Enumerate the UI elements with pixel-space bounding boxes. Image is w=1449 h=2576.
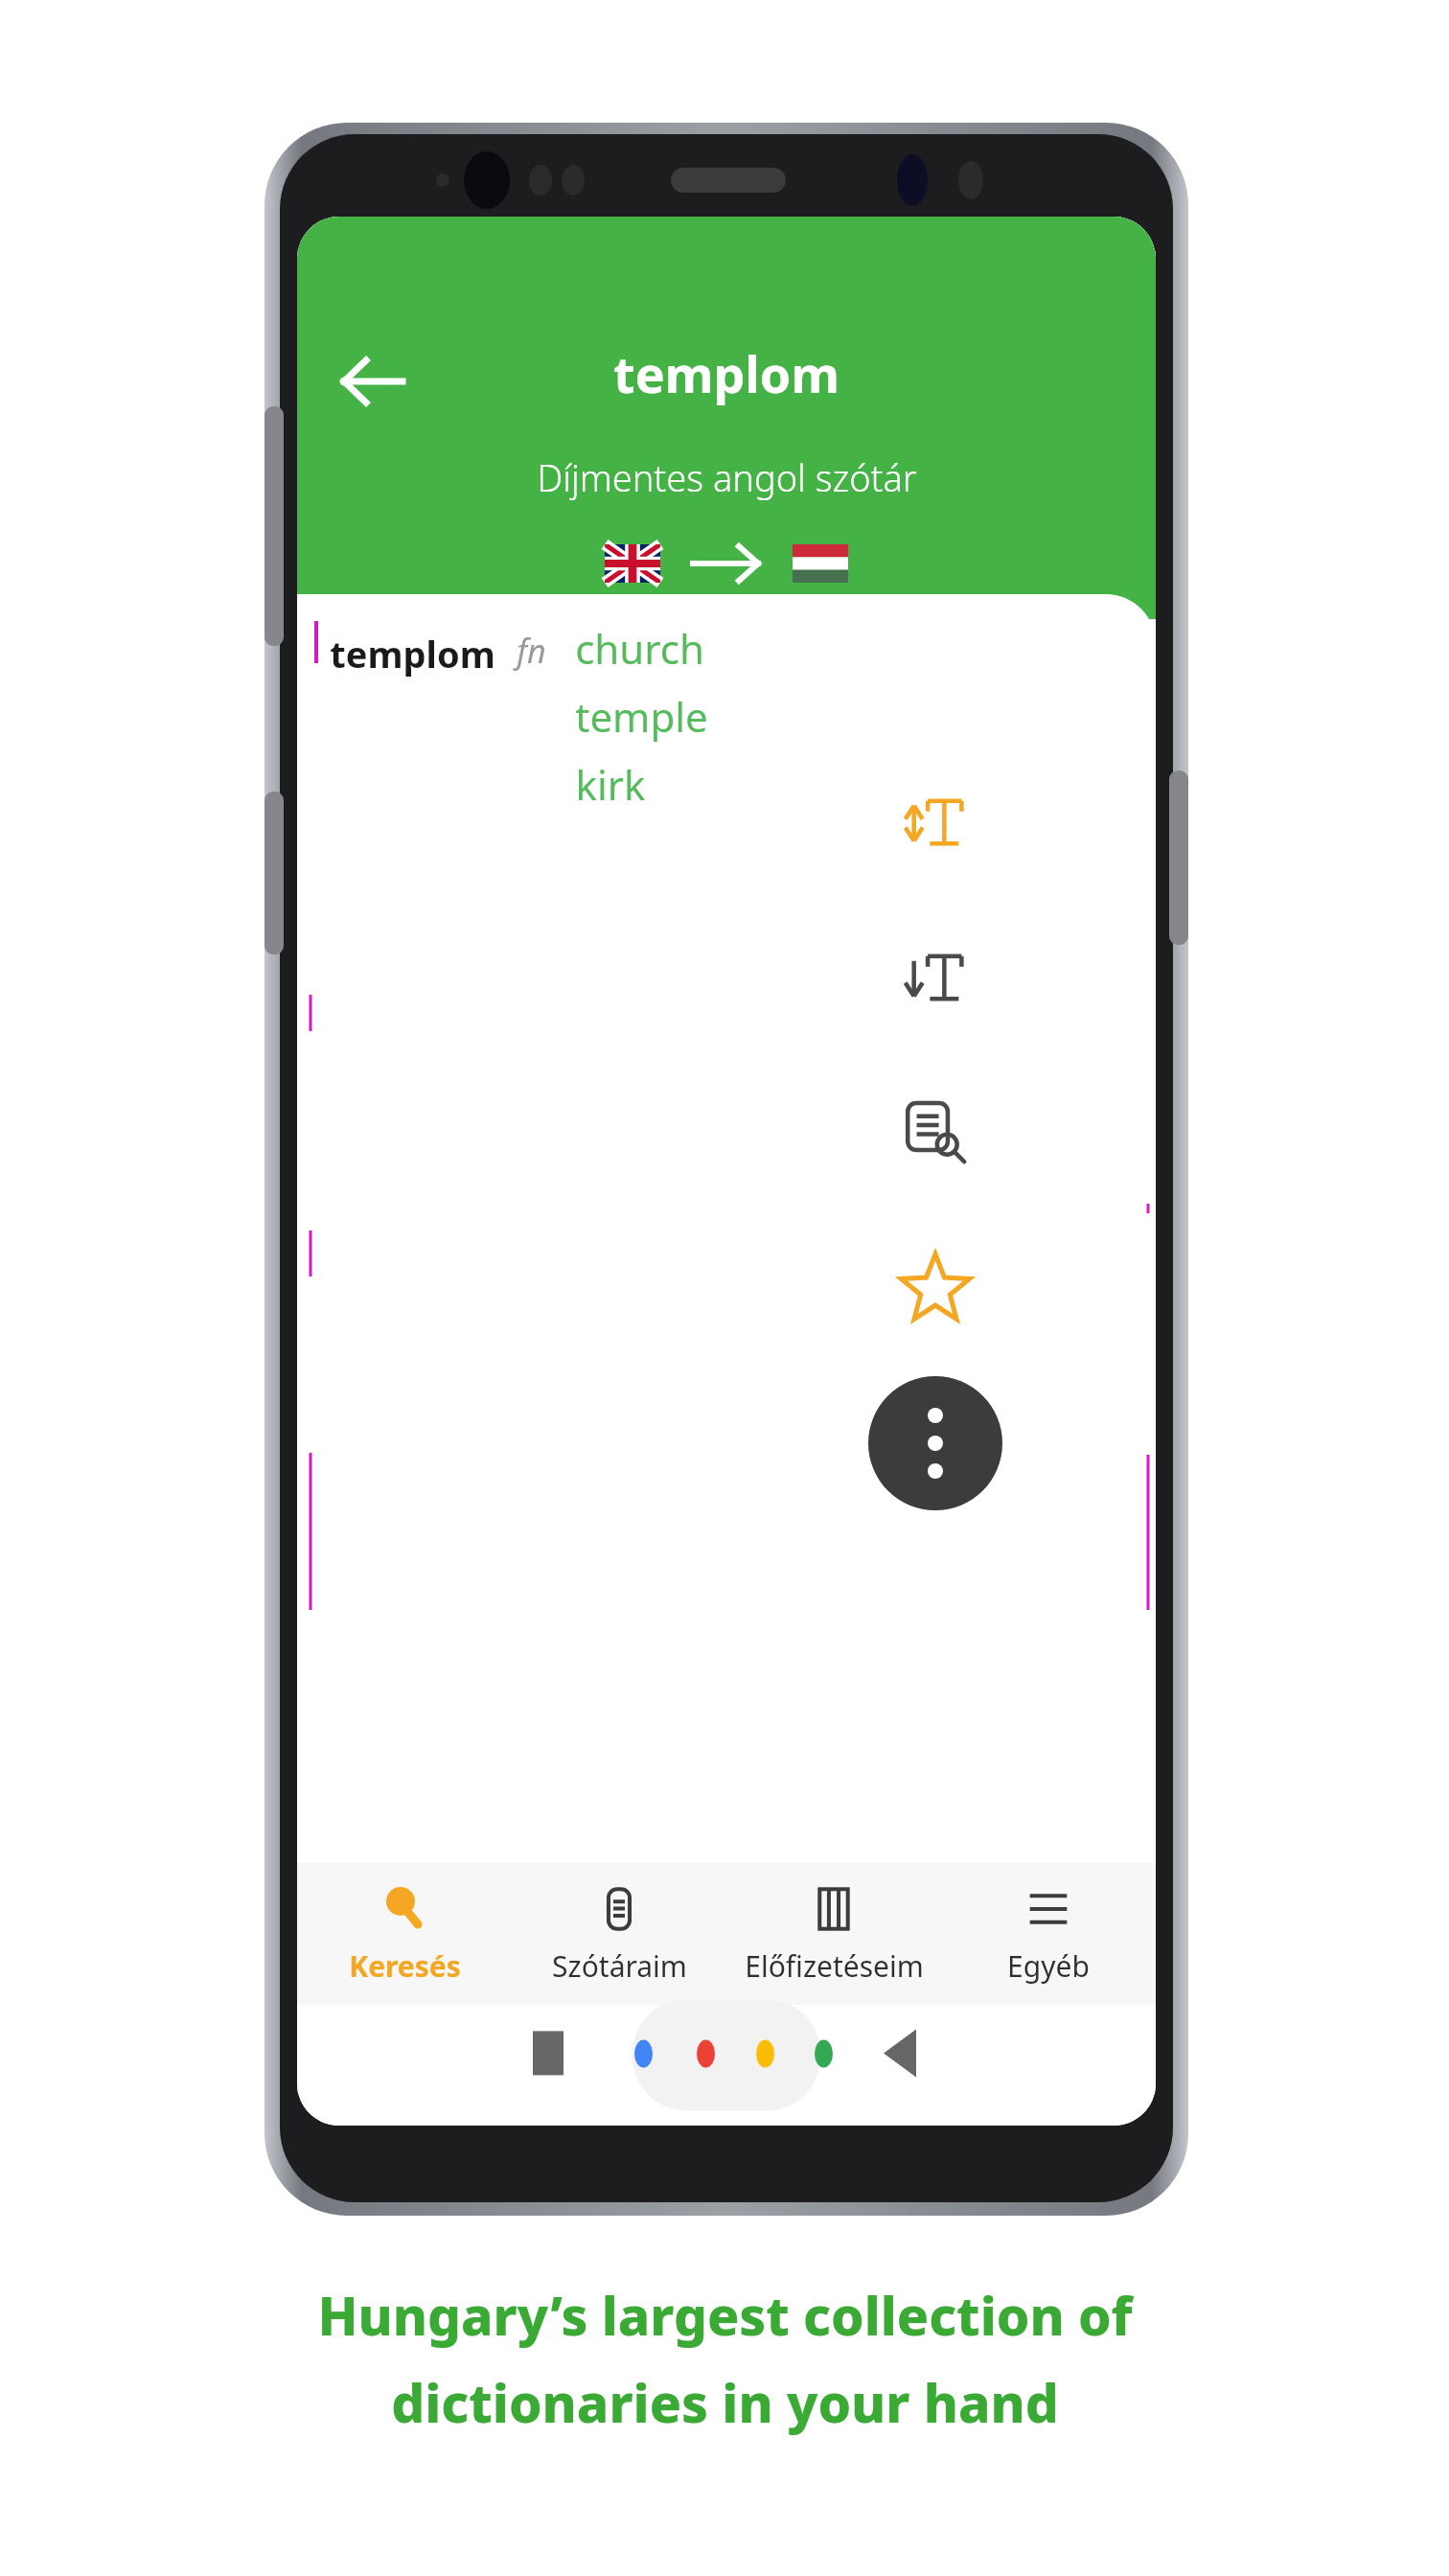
staticText: Előfizetéseim bbox=[745, 1946, 924, 1986]
button[interactable]: Szótáraim bbox=[512, 1863, 726, 2005]
staticText: templom bbox=[330, 629, 495, 678]
staticText: dictionaries in your hand bbox=[391, 2366, 1059, 2438]
staticText: fn bbox=[517, 629, 546, 673]
staticText: Hungary’s largest collection of bbox=[317, 2279, 1133, 2351]
button[interactable]: Decrease text size bbox=[868, 910, 1002, 1045]
staticText: Díjmentes angol szótár bbox=[537, 452, 917, 502]
staticText: Egyéb bbox=[1007, 1946, 1090, 1986]
button[interactable]: More options bbox=[868, 1376, 1002, 1510]
button[interactable]: Egyéb bbox=[941, 1863, 1156, 2005]
staticText: Keresés bbox=[349, 1946, 461, 1986]
staticText: church bbox=[575, 621, 704, 676]
button[interactable]: Back bbox=[318, 339, 425, 424]
staticText: Szótáraim bbox=[552, 1946, 687, 1986]
staticText: kirk bbox=[575, 757, 646, 812]
button[interactable]: Keresés bbox=[297, 1863, 512, 2005]
button[interactable]: Search in entry bbox=[868, 1066, 1002, 1200]
staticText: temple bbox=[575, 689, 708, 744]
staticText: templom bbox=[613, 339, 839, 407]
button[interactable]: Increase text size bbox=[868, 755, 1002, 889]
button[interactable]: Add to favourites bbox=[868, 1221, 1002, 1355]
button[interactable]: Előfizetéseim bbox=[726, 1863, 941, 2005]
